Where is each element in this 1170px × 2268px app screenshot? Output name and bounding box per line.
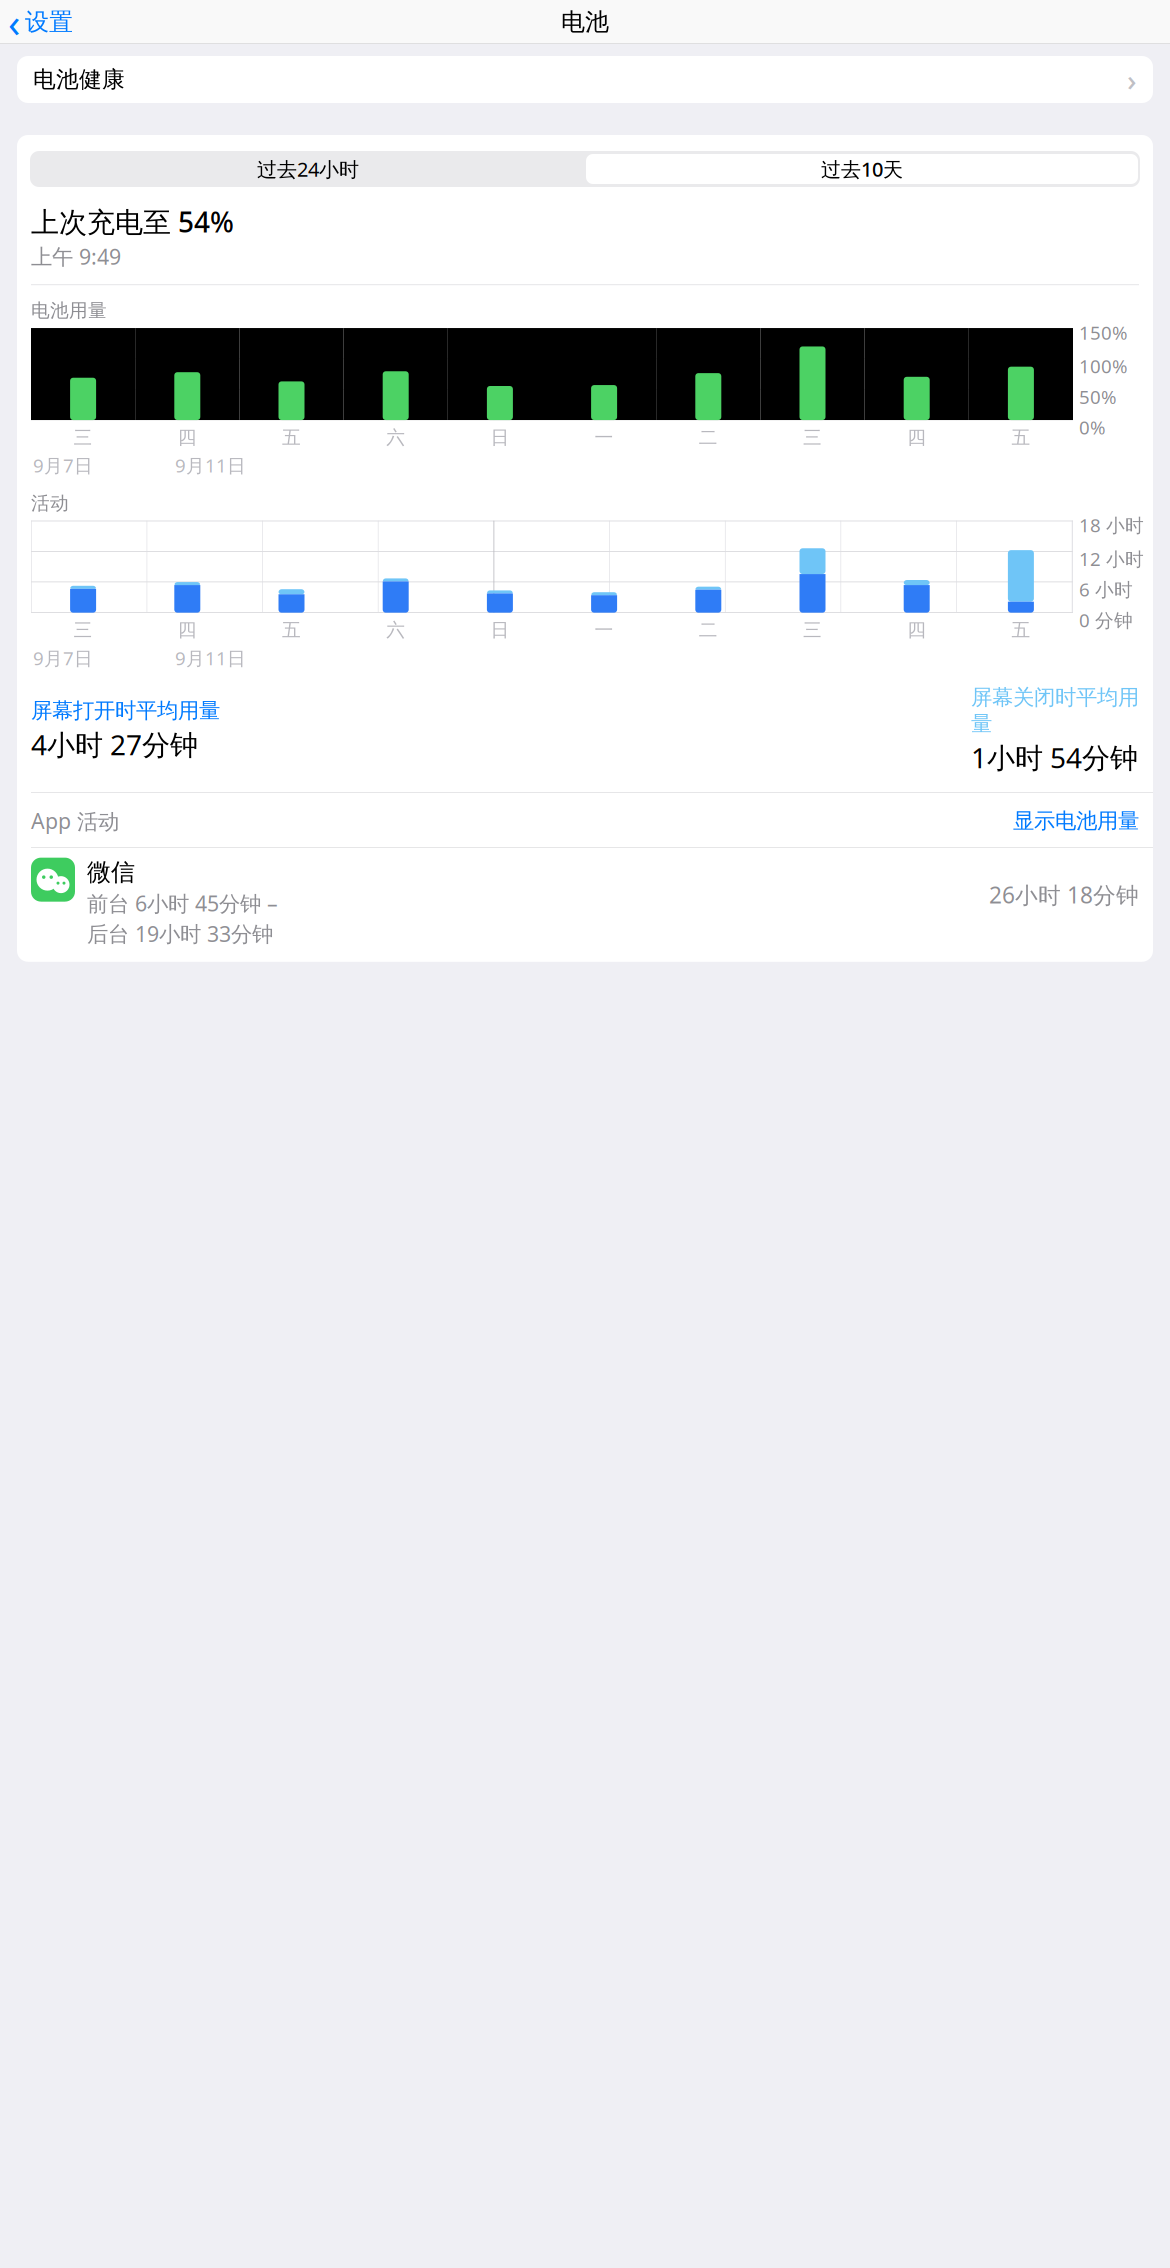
staticText: 电池: [561, 7, 609, 37]
staticText: 前台 6小时 45分钟 –: [87, 889, 278, 917]
staticText: 0 分钟: [1079, 608, 1133, 632]
staticText: 三: [74, 619, 93, 642]
staticText: 微信: [87, 858, 135, 887]
staticText: 12 小时: [1079, 546, 1144, 571]
staticText: 五: [282, 619, 301, 642]
staticText: 150%: [1079, 320, 1128, 345]
staticText: 18 小时: [1079, 513, 1144, 537]
staticText: 电池健康: [33, 66, 125, 93]
button[interactable]: 过去10天: [586, 154, 1138, 184]
staticText: App 活动: [31, 807, 119, 835]
staticText: 显示电池用量: [1013, 808, 1139, 834]
staticText: 五: [282, 426, 301, 449]
staticText: 9月7日: [33, 646, 93, 670]
staticText: 三: [74, 426, 93, 449]
staticText: 五: [1011, 619, 1030, 642]
staticText: 9月11日: [175, 453, 246, 478]
staticText: 9月11日: [175, 646, 246, 670]
staticText: 二: [699, 619, 718, 642]
staticText: 过去10天: [821, 156, 903, 182]
staticText: 二: [699, 426, 718, 449]
staticText: 4小时 27分钟: [31, 726, 198, 763]
button[interactable]: ‹: [0, 0, 73, 54]
staticText: ‹: [8, 0, 20, 48]
staticText: 一: [595, 619, 614, 642]
staticText: ›: [1127, 60, 1137, 99]
button[interactable]: 微信: [17, 848, 1153, 962]
staticText: 100%: [1079, 354, 1128, 378]
staticText: 设置: [25, 7, 73, 37]
staticText: 四: [178, 619, 197, 642]
button[interactable]: 电池健康: [17, 56, 1153, 103]
staticText: 日: [490, 619, 509, 642]
staticText: 活动: [31, 492, 69, 515]
staticText: 0%: [1079, 415, 1106, 440]
staticText: 50%: [1079, 384, 1117, 409]
staticText: 电池用量: [31, 299, 107, 322]
staticText: 上次充电至 54%: [31, 203, 234, 240]
staticText: 过去24小时: [257, 156, 359, 182]
staticText: 四: [178, 426, 197, 449]
staticText: 26小时 18分钟: [989, 880, 1139, 910]
staticText: 9月7日: [33, 453, 93, 478]
staticText: 四: [907, 619, 926, 642]
staticText: 六: [386, 619, 405, 642]
staticText: 屏幕打开时平均用量: [31, 697, 220, 724]
staticText: 1小时 54分钟: [971, 739, 1138, 776]
staticText: 四: [907, 426, 926, 449]
staticText: 三: [803, 426, 822, 449]
staticText: 一: [595, 426, 614, 449]
button[interactable]: 显示电池用量: [1013, 808, 1139, 834]
staticText: 五: [1011, 426, 1030, 449]
staticText: 六: [386, 426, 405, 449]
staticText: 6 小时: [1079, 577, 1133, 602]
staticText: 后台 19小时 33分钟: [87, 919, 273, 948]
button[interactable]: 过去24小时: [32, 154, 584, 184]
staticText: 三: [803, 619, 822, 642]
staticText: 屏幕关闭时平均用量: [971, 684, 1139, 737]
staticText: 上午 9:49: [31, 242, 121, 270]
staticText: 日: [490, 426, 509, 449]
